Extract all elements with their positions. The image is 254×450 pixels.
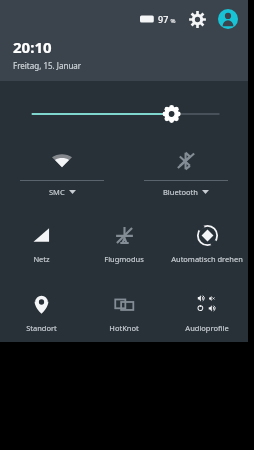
button[interactable]: SMC — [0, 140, 124, 201]
staticText: Standort — [26, 323, 57, 333]
staticText: Bluetooth — [163, 187, 198, 197]
button[interactable]: Standort — [0, 286, 82, 342]
staticText: HotKnot — [109, 323, 139, 333]
button[interactable]: Automatisch drehen — [165, 217, 248, 273]
button[interactable]: Netz — [0, 217, 82, 273]
staticText: 97 — [158, 13, 169, 25]
button[interactable]: Audioprofile — [165, 286, 248, 342]
staticText: Netz — [33, 254, 50, 264]
button[interactable]: Settings — [186, 8, 208, 30]
button[interactable]: Brightness — [0, 103, 248, 125]
button[interactable]: HotKnot — [82, 286, 165, 342]
button[interactable]: Flugmodus — [82, 217, 165, 273]
button[interactable]: User profile — [216, 7, 239, 30]
staticText: Flugmodus — [104, 254, 144, 264]
staticText: % — [169, 17, 176, 25]
staticText: Automatisch drehen — [171, 254, 243, 264]
button[interactable]: Bluetooth — [124, 140, 248, 201]
staticText: SMC — [49, 187, 65, 197]
staticText: 20:10 — [13, 37, 52, 57]
staticText: Freitag, 15. Januar — [13, 60, 82, 71]
staticText: Audioprofile — [185, 323, 229, 333]
